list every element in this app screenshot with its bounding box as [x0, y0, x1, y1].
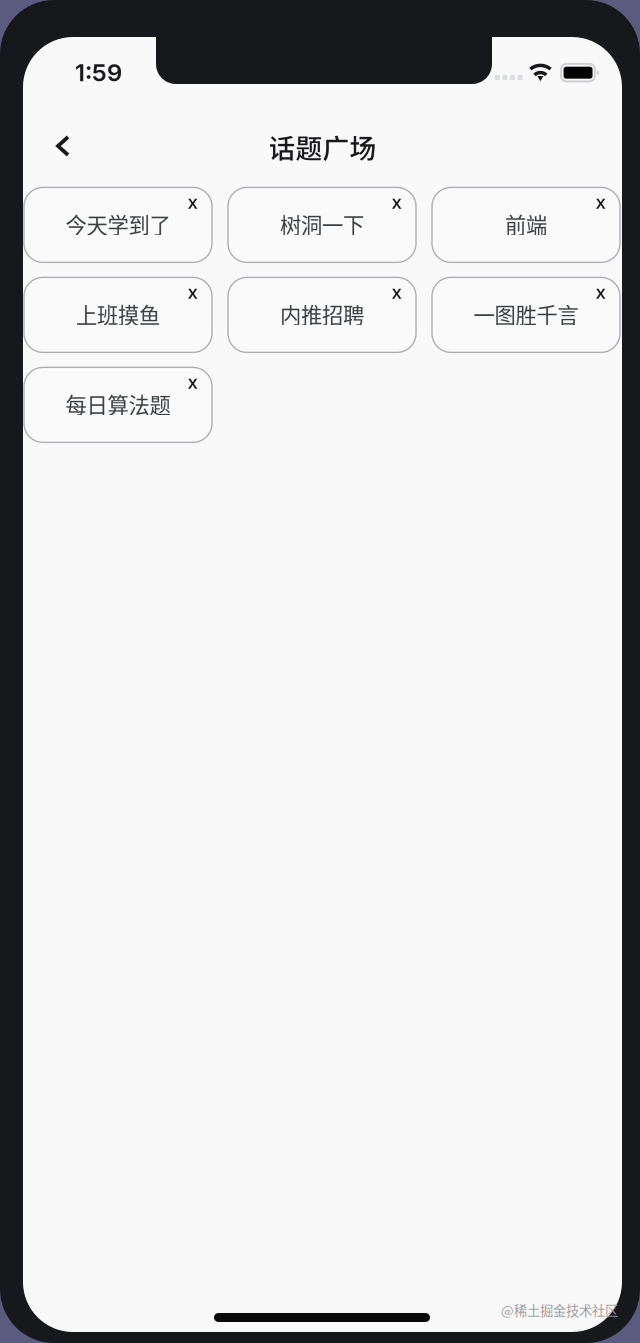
staticText: 内推招聘 — [280, 298, 364, 329]
button[interactable]: Remove 前端 — [585, 188, 615, 216]
button[interactable]: 前端 — [432, 187, 620, 262]
staticText: x — [187, 371, 197, 393]
staticText: x — [391, 281, 401, 303]
staticText: 话题广场 — [268, 127, 376, 166]
button[interactable]: Remove 每日算法题 — [177, 368, 207, 396]
button[interactable]: 一图胜千言 — [432, 277, 620, 352]
staticText: x — [595, 191, 605, 213]
staticText: x — [391, 191, 401, 213]
button[interactable]: Remove 内推招聘 — [381, 278, 411, 306]
button[interactable]: 上班摸鱼 — [24, 277, 212, 352]
button[interactable]: Remove 树洞一下 — [381, 188, 411, 216]
button[interactable]: 每日算法题 — [24, 367, 212, 442]
staticText: x — [595, 281, 605, 303]
staticText: 每日算法题 — [65, 388, 170, 419]
staticText: x — [187, 191, 197, 213]
staticText: 树洞一下 — [280, 208, 364, 239]
button[interactable]: Back — [40, 123, 86, 169]
staticText: @稀土掘金技术社区 — [501, 1300, 618, 1320]
staticText: x — [187, 281, 197, 303]
staticText: 上班摸鱼 — [76, 298, 160, 329]
staticText: 前端 — [505, 208, 547, 239]
staticText: 1:59 — [75, 58, 122, 87]
staticText: 一图胜千言 — [473, 298, 578, 329]
button[interactable]: Remove 今天学到了 — [177, 188, 207, 216]
button[interactable]: Remove 一图胜千言 — [585, 278, 615, 306]
button[interactable]: 树洞一下 — [228, 187, 416, 262]
button[interactable]: Remove 上班摸鱼 — [177, 278, 207, 306]
staticText: 今天学到了 — [65, 208, 170, 239]
button[interactable]: 今天学到了 — [24, 187, 212, 262]
button[interactable]: 内推招聘 — [228, 277, 416, 352]
